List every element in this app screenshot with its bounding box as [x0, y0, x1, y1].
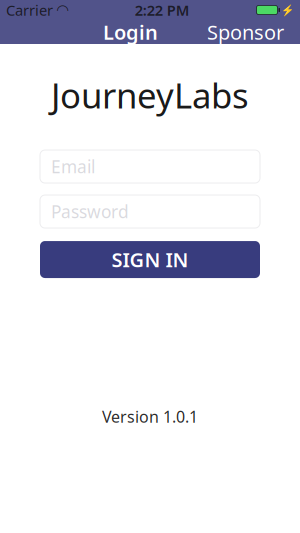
staticText: Version 1.0.1 [102, 406, 198, 427]
staticText: Carrier [6, 0, 53, 20]
staticText: Email [51, 155, 95, 178]
button[interactable]: Email [40, 150, 260, 183]
staticText: JourneyLabs [51, 72, 249, 118]
staticText: ⚡ [281, 4, 294, 16]
staticText: Login [103, 19, 158, 45]
staticText [53, 0, 57, 20]
button[interactable]: SIGN IN [40, 241, 260, 278]
staticText: 2:22 PM [135, 0, 190, 20]
staticText: ◠ [57, 2, 68, 18]
staticText: Sponsor [207, 19, 284, 45]
button[interactable]: Password [40, 195, 260, 228]
button[interactable]: Sponsor [197, 15, 294, 49]
staticText: Password [51, 200, 129, 223]
staticText: SIGN IN [111, 246, 188, 273]
